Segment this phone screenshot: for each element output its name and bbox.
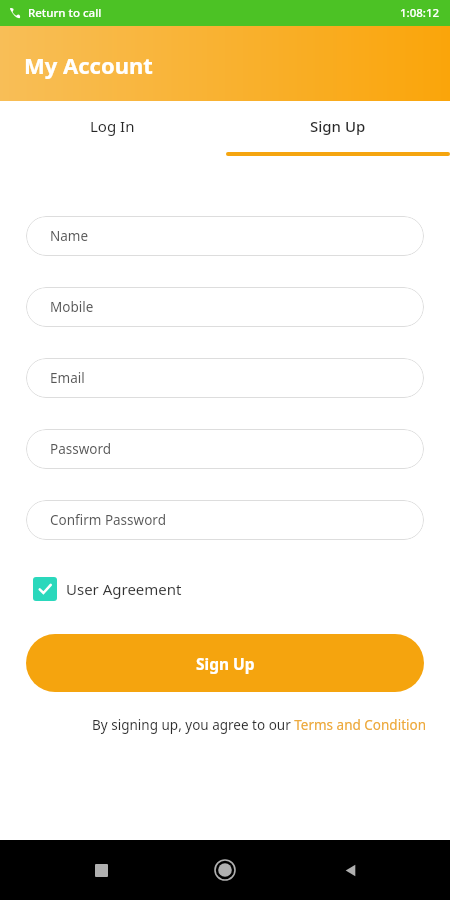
button[interactable]: Recent apps [77, 846, 125, 894]
staticText: 1:08:12 [400, 5, 440, 21]
staticText: Mobile [50, 298, 94, 316]
button[interactable]: Confirm Password [26, 500, 424, 540]
button[interactable]: By signing up, you agree to our Terms an… [24, 716, 426, 734]
button[interactable]: Home [201, 846, 249, 894]
button[interactable]: Password [26, 429, 424, 469]
staticText: Confirm Password [50, 511, 166, 529]
staticText: User Agreement [66, 579, 182, 599]
staticText: Password [50, 440, 112, 458]
staticText: Sign Up [310, 116, 366, 136]
staticText: Return to call [28, 5, 102, 21]
button[interactable]: Log In [0, 101, 225, 160]
staticText: Name [50, 227, 89, 245]
button[interactable]: Email [26, 358, 424, 398]
staticText: Email [50, 369, 85, 387]
button[interactable]: User Agreement [33, 577, 182, 601]
staticText: My Account [24, 50, 153, 80]
staticText: Sign Up [196, 653, 255, 674]
button[interactable]: Sign Up [225, 101, 450, 160]
button[interactable]: Name [26, 216, 424, 256]
button[interactable]: Mobile [26, 287, 424, 327]
button[interactable]: Back [326, 846, 374, 894]
button[interactable]: Sign Up [26, 634, 424, 692]
staticText: Log In [90, 116, 135, 136]
